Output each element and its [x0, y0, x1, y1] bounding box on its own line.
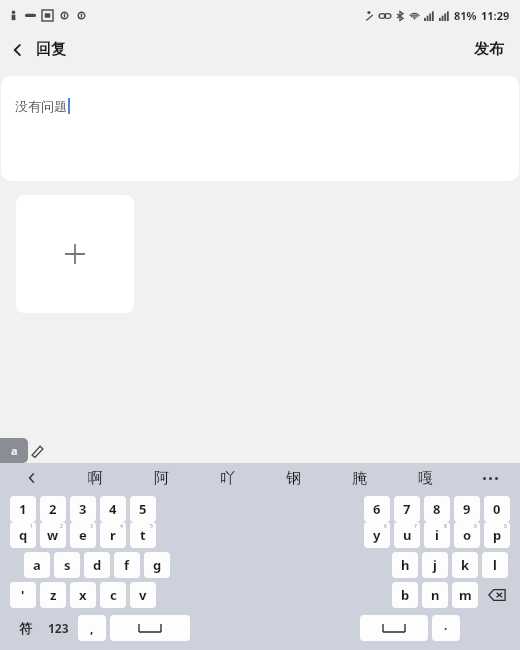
- button[interactable]: Previous: [22, 468, 42, 488]
- staticText: ': [21, 586, 25, 604]
- button[interactable]: d: [84, 552, 110, 578]
- staticText: 4: [109, 500, 117, 518]
- button[interactable]: u: [394, 522, 420, 548]
- button[interactable]: j: [422, 552, 448, 578]
- button[interactable]: q: [10, 522, 36, 548]
- button[interactable]: w: [40, 522, 66, 548]
- button[interactable]: 腌: [339, 463, 379, 493]
- staticText: o: [463, 526, 472, 544]
- staticText: 2: [60, 523, 63, 530]
- staticText: h: [401, 556, 410, 574]
- button[interactable]: Add photo: [16, 195, 134, 313]
- button[interactable]: Keyboard mode: [0, 438, 28, 463]
- staticText: 2: [49, 500, 57, 518]
- staticText: 钢: [286, 469, 301, 488]
- staticText: ·: [444, 620, 448, 636]
- button[interactable]: a: [24, 552, 50, 578]
- staticText: 腌: [352, 469, 367, 488]
- staticText: 发布: [474, 40, 504, 59]
- button[interactable]: 啊: [75, 463, 115, 493]
- staticText: u: [403, 526, 412, 544]
- button[interactable]: y: [364, 522, 390, 548]
- button[interactable]: f: [114, 552, 140, 578]
- button[interactable]: g: [144, 552, 170, 578]
- button[interactable]: i: [424, 522, 450, 548]
- button[interactable]: z: [40, 582, 66, 608]
- button[interactable]: b: [392, 582, 418, 608]
- staticText: 4: [120, 523, 123, 530]
- button[interactable]: m: [452, 582, 478, 608]
- button[interactable]: r: [100, 522, 126, 548]
- staticText: 吖: [220, 469, 235, 488]
- button[interactable]: t: [130, 522, 156, 548]
- button[interactable]: p: [484, 522, 510, 548]
- staticText: y: [373, 526, 381, 544]
- button[interactable]: 6: [364, 496, 390, 522]
- staticText: 7: [414, 523, 417, 530]
- button[interactable]: ': [10, 582, 36, 608]
- button[interactable]: 0: [484, 496, 510, 522]
- button[interactable]: 9: [454, 496, 480, 522]
- button[interactable]: 5: [130, 496, 156, 522]
- button[interactable]: 阿: [141, 463, 181, 493]
- staticText: z: [50, 586, 57, 604]
- button[interactable]: 1: [10, 496, 36, 522]
- button[interactable]: 没有问题: [1, 76, 519, 181]
- button[interactable]: Space: [360, 615, 428, 641]
- staticText: 0: [493, 500, 501, 518]
- staticText: e: [79, 526, 87, 544]
- staticText: v: [139, 586, 147, 604]
- staticText: 11:29: [481, 8, 510, 23]
- button[interactable]: o: [454, 522, 480, 548]
- staticText: b: [401, 586, 410, 604]
- button[interactable]: 吖: [207, 463, 247, 493]
- staticText: 81%: [454, 8, 477, 23]
- staticText: l: [493, 556, 497, 574]
- button[interactable]: l: [482, 552, 508, 578]
- staticText: x: [79, 586, 87, 604]
- button[interactable]: 7: [394, 496, 420, 522]
- button[interactable]: e: [70, 522, 96, 548]
- button[interactable]: ·: [432, 615, 460, 641]
- button[interactable]: 符: [10, 615, 40, 641]
- staticText: 123: [48, 620, 69, 636]
- staticText: 3: [90, 523, 93, 530]
- staticText: r: [110, 526, 116, 544]
- button[interactable]: n: [422, 582, 448, 608]
- staticText: s: [64, 556, 71, 574]
- staticText: 嘎: [418, 469, 433, 488]
- staticText: 9: [463, 500, 471, 518]
- staticText: 没有问题: [15, 98, 67, 114]
- button[interactable]: ,: [78, 615, 106, 641]
- button[interactable]: 3: [70, 496, 96, 522]
- staticText: d: [93, 556, 102, 574]
- button[interactable]: 钢: [273, 463, 313, 493]
- button[interactable]: k: [452, 552, 478, 578]
- staticText: 6: [373, 500, 381, 518]
- button[interactable]: 8: [424, 496, 450, 522]
- button[interactable]: v: [130, 582, 156, 608]
- button[interactable]: s: [54, 552, 80, 578]
- button[interactable]: 4: [100, 496, 126, 522]
- button[interactable]: Backspace: [480, 582, 514, 608]
- button[interactable]: 发布: [458, 34, 520, 65]
- staticText: 5: [139, 500, 147, 518]
- button[interactable]: h: [392, 552, 418, 578]
- other: Back: [10, 42, 26, 58]
- button[interactable]: c: [100, 582, 126, 608]
- button[interactable]: 2: [40, 496, 66, 522]
- button[interactable]: Space: [110, 615, 190, 641]
- button[interactable]: x: [70, 582, 96, 608]
- staticText: k: [461, 556, 470, 574]
- button[interactable]: More candidates: [478, 466, 502, 490]
- staticText: p: [493, 526, 502, 544]
- staticText: 啊: [88, 469, 103, 488]
- button[interactable]: 嘎: [405, 463, 445, 493]
- staticText: a: [11, 443, 18, 458]
- staticText: 0: [504, 523, 507, 530]
- staticText: 1: [19, 500, 27, 518]
- staticText: j: [433, 556, 437, 574]
- staticText: w: [47, 526, 59, 544]
- button[interactable]: 123: [40, 615, 76, 641]
- button[interactable]: Back: [0, 36, 76, 63]
